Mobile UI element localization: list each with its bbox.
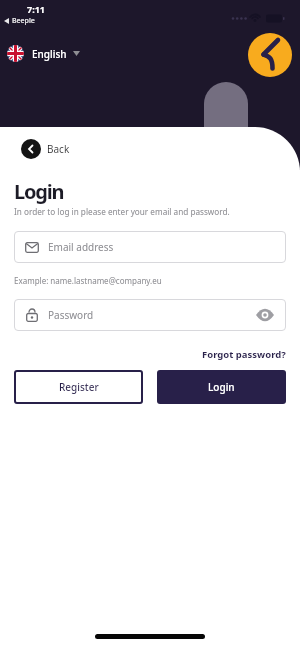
staticText: Back [47, 142, 70, 156]
staticText: Login [14, 178, 64, 205]
staticText: 7:11 [27, 3, 45, 15]
staticText: Example: name.lastname@company.eu [14, 275, 162, 286]
button[interactable]: English [7, 45, 80, 62]
button[interactable] [248, 33, 292, 77]
button[interactable]: Back [21, 139, 70, 159]
button[interactable]: Forgot password? [202, 348, 286, 361]
button[interactable]: Login [157, 370, 286, 404]
staticText: Password [48, 308, 94, 322]
button[interactable]: Password [14, 299, 286, 331]
staticText: Email address [48, 240, 114, 254]
staticText: In order to log in please enter your ema… [14, 206, 230, 217]
staticText: Login [208, 380, 235, 394]
button[interactable]: Email address [14, 231, 286, 263]
button[interactable]: Register [14, 370, 143, 404]
staticText: Beeple [12, 16, 35, 26]
staticText: English [32, 47, 67, 61]
staticText: Register [59, 380, 99, 394]
